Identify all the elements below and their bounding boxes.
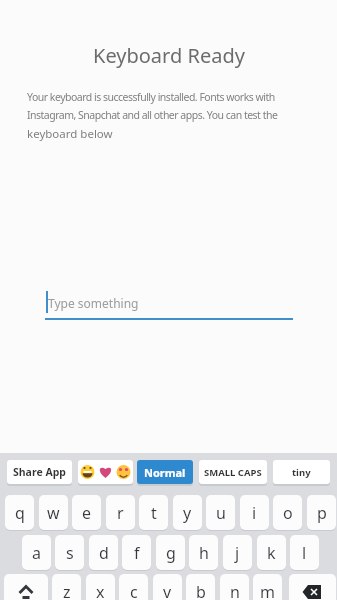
button[interactable]: i bbox=[240, 495, 269, 530]
button[interactable]: g bbox=[156, 535, 185, 570]
staticText: k bbox=[267, 542, 276, 564]
staticText: r bbox=[117, 502, 124, 524]
button[interactable]: d bbox=[89, 535, 118, 570]
button[interactable]: x bbox=[86, 574, 115, 600]
button[interactable] bbox=[4, 574, 48, 600]
button[interactable]: h bbox=[189, 535, 218, 570]
staticText: tiny bbox=[292, 466, 311, 479]
button[interactable]: Type something bbox=[45, 285, 293, 325]
staticText: w bbox=[47, 502, 60, 524]
button[interactable]: t bbox=[139, 495, 168, 530]
staticText: n bbox=[230, 581, 240, 600]
button[interactable]: l bbox=[290, 535, 319, 570]
button[interactable]: b bbox=[186, 574, 215, 600]
button[interactable]: u bbox=[206, 495, 235, 530]
button[interactable]: p bbox=[307, 495, 336, 530]
button[interactable]: q bbox=[5, 495, 34, 530]
staticText: z bbox=[63, 581, 71, 600]
staticText: u bbox=[216, 502, 226, 524]
staticText: Your keyboard is successfully installed.… bbox=[27, 90, 275, 104]
staticText: Share App bbox=[13, 465, 66, 479]
button[interactable]: f bbox=[122, 535, 151, 570]
staticText: t bbox=[151, 502, 157, 524]
button[interactable]: n bbox=[220, 574, 249, 600]
staticText: j bbox=[235, 542, 240, 564]
staticText: Instagram, Snapchat and all other apps. … bbox=[27, 108, 278, 122]
staticText: b bbox=[196, 581, 206, 600]
staticText: a bbox=[32, 542, 41, 564]
button[interactable] bbox=[78, 460, 133, 484]
staticText: p bbox=[317, 502, 327, 524]
staticText: o bbox=[283, 502, 293, 524]
button[interactable]: a bbox=[22, 535, 51, 570]
staticText: d bbox=[99, 542, 109, 564]
button[interactable]: s bbox=[55, 535, 84, 570]
staticText: l bbox=[302, 542, 307, 564]
button[interactable] bbox=[289, 574, 336, 600]
staticText: e bbox=[82, 502, 92, 524]
staticText: i bbox=[252, 502, 257, 524]
button[interactable]: v bbox=[153, 574, 182, 600]
staticText: h bbox=[199, 542, 209, 564]
button[interactable]: Normal bbox=[137, 460, 193, 484]
staticText: keyboard below bbox=[27, 126, 113, 142]
staticText: Normal bbox=[144, 465, 186, 480]
button[interactable]: j bbox=[223, 535, 252, 570]
button[interactable]: k bbox=[257, 535, 286, 570]
staticText: x bbox=[96, 581, 105, 600]
button[interactable]: z bbox=[52, 574, 81, 600]
staticText: c bbox=[130, 581, 138, 600]
button[interactable]: w bbox=[39, 495, 68, 530]
staticText: Type something bbox=[48, 295, 139, 311]
staticText: q bbox=[15, 502, 25, 524]
button[interactable]: o bbox=[273, 495, 302, 530]
staticText: SMALL CAPS bbox=[204, 466, 262, 479]
staticText: v bbox=[163, 581, 172, 600]
button[interactable]: m bbox=[253, 574, 282, 600]
button[interactable]: e bbox=[72, 495, 101, 530]
button[interactable]: Share App bbox=[7, 460, 72, 484]
button[interactable]: y bbox=[173, 495, 202, 530]
button[interactable]: tiny bbox=[273, 460, 330, 484]
staticText: y bbox=[183, 502, 192, 524]
button[interactable]: SMALL CAPS bbox=[199, 460, 267, 484]
button[interactable]: r bbox=[106, 495, 135, 530]
staticText: s bbox=[66, 542, 74, 564]
button[interactable]: c bbox=[119, 574, 148, 600]
staticText: Keyboard Ready bbox=[93, 42, 245, 69]
staticText: m bbox=[260, 581, 275, 600]
staticText: f bbox=[134, 542, 140, 564]
staticText: g bbox=[166, 542, 176, 564]
